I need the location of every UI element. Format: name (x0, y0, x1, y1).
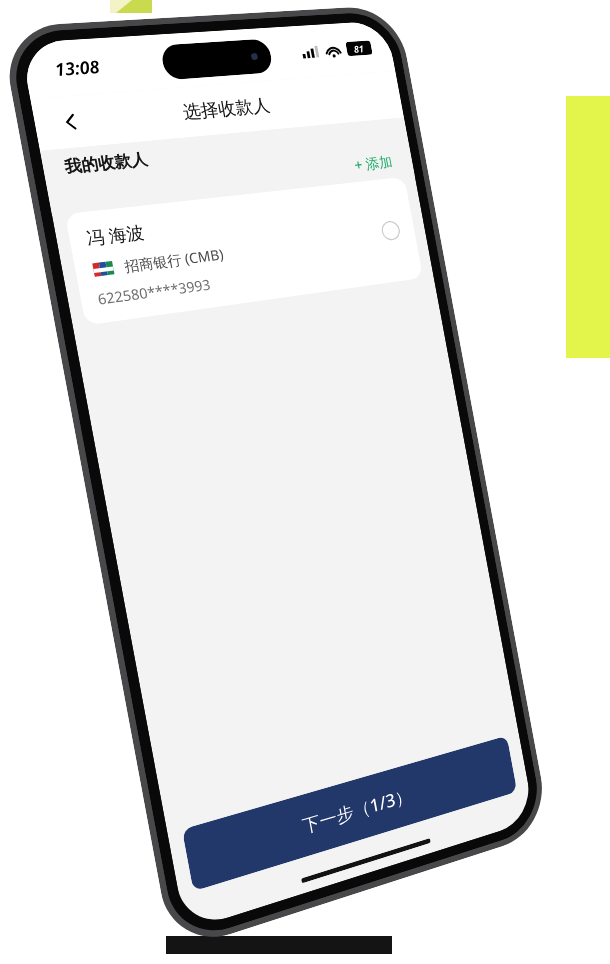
staticText: 13:08 (53, 55, 102, 81)
staticText: 下一步（1/3） (300, 782, 414, 839)
button[interactable]: Back (46, 100, 96, 144)
staticText: + 添加 (353, 151, 394, 174)
staticText: 我的收款人 (63, 149, 149, 178)
staticText: 冯 海波 (84, 220, 146, 250)
button[interactable]: + 添加 (348, 147, 398, 178)
staticText: 81 (353, 42, 366, 56)
staticText: 选择收款人 (181, 94, 272, 124)
button[interactable]: 冯 海波 (65, 177, 423, 326)
staticText: 招商银行 (CMB) (123, 244, 225, 276)
button[interactable]: 下一步（1/3） (182, 736, 517, 891)
staticText: 622580****3993 (96, 274, 212, 309)
